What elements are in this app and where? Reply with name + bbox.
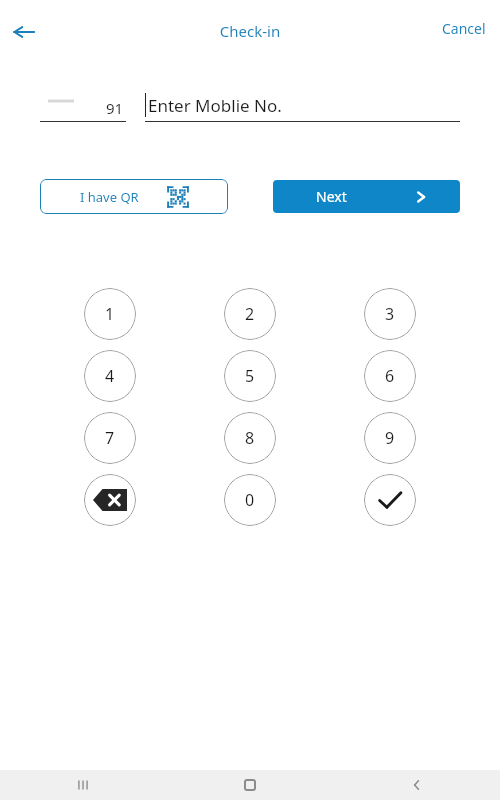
button[interactable]: 6 [364,350,416,402]
staticText: 1 [105,303,115,325]
button[interactable]: 2 [224,288,276,340]
button[interactable]: 8 [224,412,276,464]
button[interactable]: 5 [224,350,276,402]
button[interactable]: 0 [224,474,276,526]
staticText: 9 [385,427,395,449]
staticText: 7 [105,427,115,449]
staticText: 5 [245,365,255,387]
staticText: 3 [385,303,395,325]
button[interactable]: Recents [0,770,166,800]
staticText: 0 [245,489,255,511]
staticText: Cancel [442,19,486,38]
button[interactable]: I have QR [40,179,228,214]
button[interactable]: Cancel [428,14,500,43]
staticText: 4 [105,365,115,387]
button[interactable]: Enter Moblie No. [145,86,460,122]
staticText: Enter Moblie No. [148,94,282,117]
button[interactable]: 91 [40,86,126,122]
button[interactable]: Next [273,180,460,213]
button[interactable]: Home [166,770,333,800]
staticText: 6 [385,365,395,387]
staticText: I have QR [80,188,139,206]
button[interactable]: Back [6,14,42,50]
staticText: 91 [106,98,124,118]
button[interactable]: 4 [84,350,136,402]
button[interactable]: Backspace [84,474,136,526]
button[interactable]: Back [333,770,500,800]
button[interactable]: 7 [84,412,136,464]
staticText: 2 [245,303,255,325]
staticText: 8 [245,427,255,449]
staticText: Check-in [0,21,500,41]
button[interactable]: 3 [364,288,416,340]
button[interactable]: 1 [84,288,136,340]
button[interactable]: 9 [364,412,416,464]
staticText: Next [316,187,347,206]
button[interactable]: Confirm [364,474,416,526]
